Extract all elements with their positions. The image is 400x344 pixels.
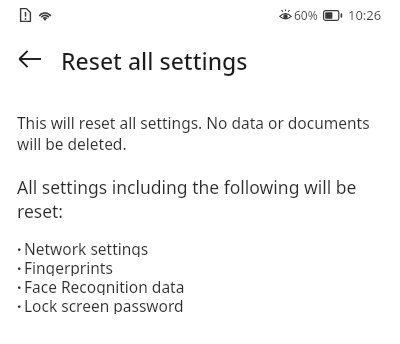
staticText: All settings including the following wil…: [17, 175, 388, 223]
staticText: 60%: [294, 7, 318, 23]
staticText: Fingerprints: [24, 257, 113, 276]
staticText: This will reset all settings. No data or…: [17, 112, 388, 155]
staticText: ·: [17, 276, 22, 295]
staticText: Network settings: [24, 238, 149, 257]
staticText: Reset all settings: [61, 45, 248, 76]
staticText: Lock screen password: [24, 295, 184, 314]
staticText: 10:26: [348, 6, 382, 24]
button[interactable]: Back: [10, 39, 50, 79]
staticText: Face Recognition data: [24, 276, 185, 295]
staticText: ·: [17, 295, 22, 314]
staticText: ·: [17, 257, 22, 276]
staticText: ·: [17, 238, 22, 257]
